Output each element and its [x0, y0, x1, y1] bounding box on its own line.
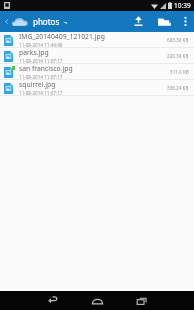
- staticText: 311.0 KB: [170, 69, 189, 75]
- button[interactable]: More options: [177, 11, 194, 32]
- staticText: parks.jpg: [19, 48, 49, 57]
- button[interactable]: New folder: [151, 11, 177, 32]
- staticText: 220.39 KB: [167, 53, 189, 59]
- button[interactable]: Back: [31, 291, 75, 310]
- staticText: 336.24 KB: [167, 85, 189, 91]
- button[interactable]: IMG_20140409_121021.jpg: [0, 32, 194, 47]
- button[interactable]: Recents: [119, 291, 163, 310]
- staticText: 11-08-2014 11:44:40: [19, 42, 63, 47]
- staticText: squirrel.jpg: [19, 80, 56, 89]
- staticText: 11-08-2014 11:07:17: [19, 58, 63, 63]
- button[interactable]: Upload: [125, 11, 151, 32]
- button[interactable]: san francisco.jpg: [0, 64, 194, 79]
- staticText: 11-08-2014 11:07:17: [19, 74, 63, 79]
- button[interactable]: parks.jpg: [0, 48, 194, 63]
- button[interactable]: squirrel.jpg: [0, 80, 194, 95]
- staticText: 11-08-2014 11:07:17: [19, 90, 63, 95]
- staticText: 603.30 KB: [167, 37, 189, 43]
- button[interactable]: Home: [75, 291, 119, 310]
- staticText: san francisco.jpg: [19, 64, 73, 73]
- staticText: 10:39: [174, 1, 191, 10]
- staticText: photos: [33, 16, 60, 27]
- staticText: IMG_20140409_121021.jpg: [19, 32, 105, 41]
- button[interactable]: photos: [0, 11, 73, 32]
